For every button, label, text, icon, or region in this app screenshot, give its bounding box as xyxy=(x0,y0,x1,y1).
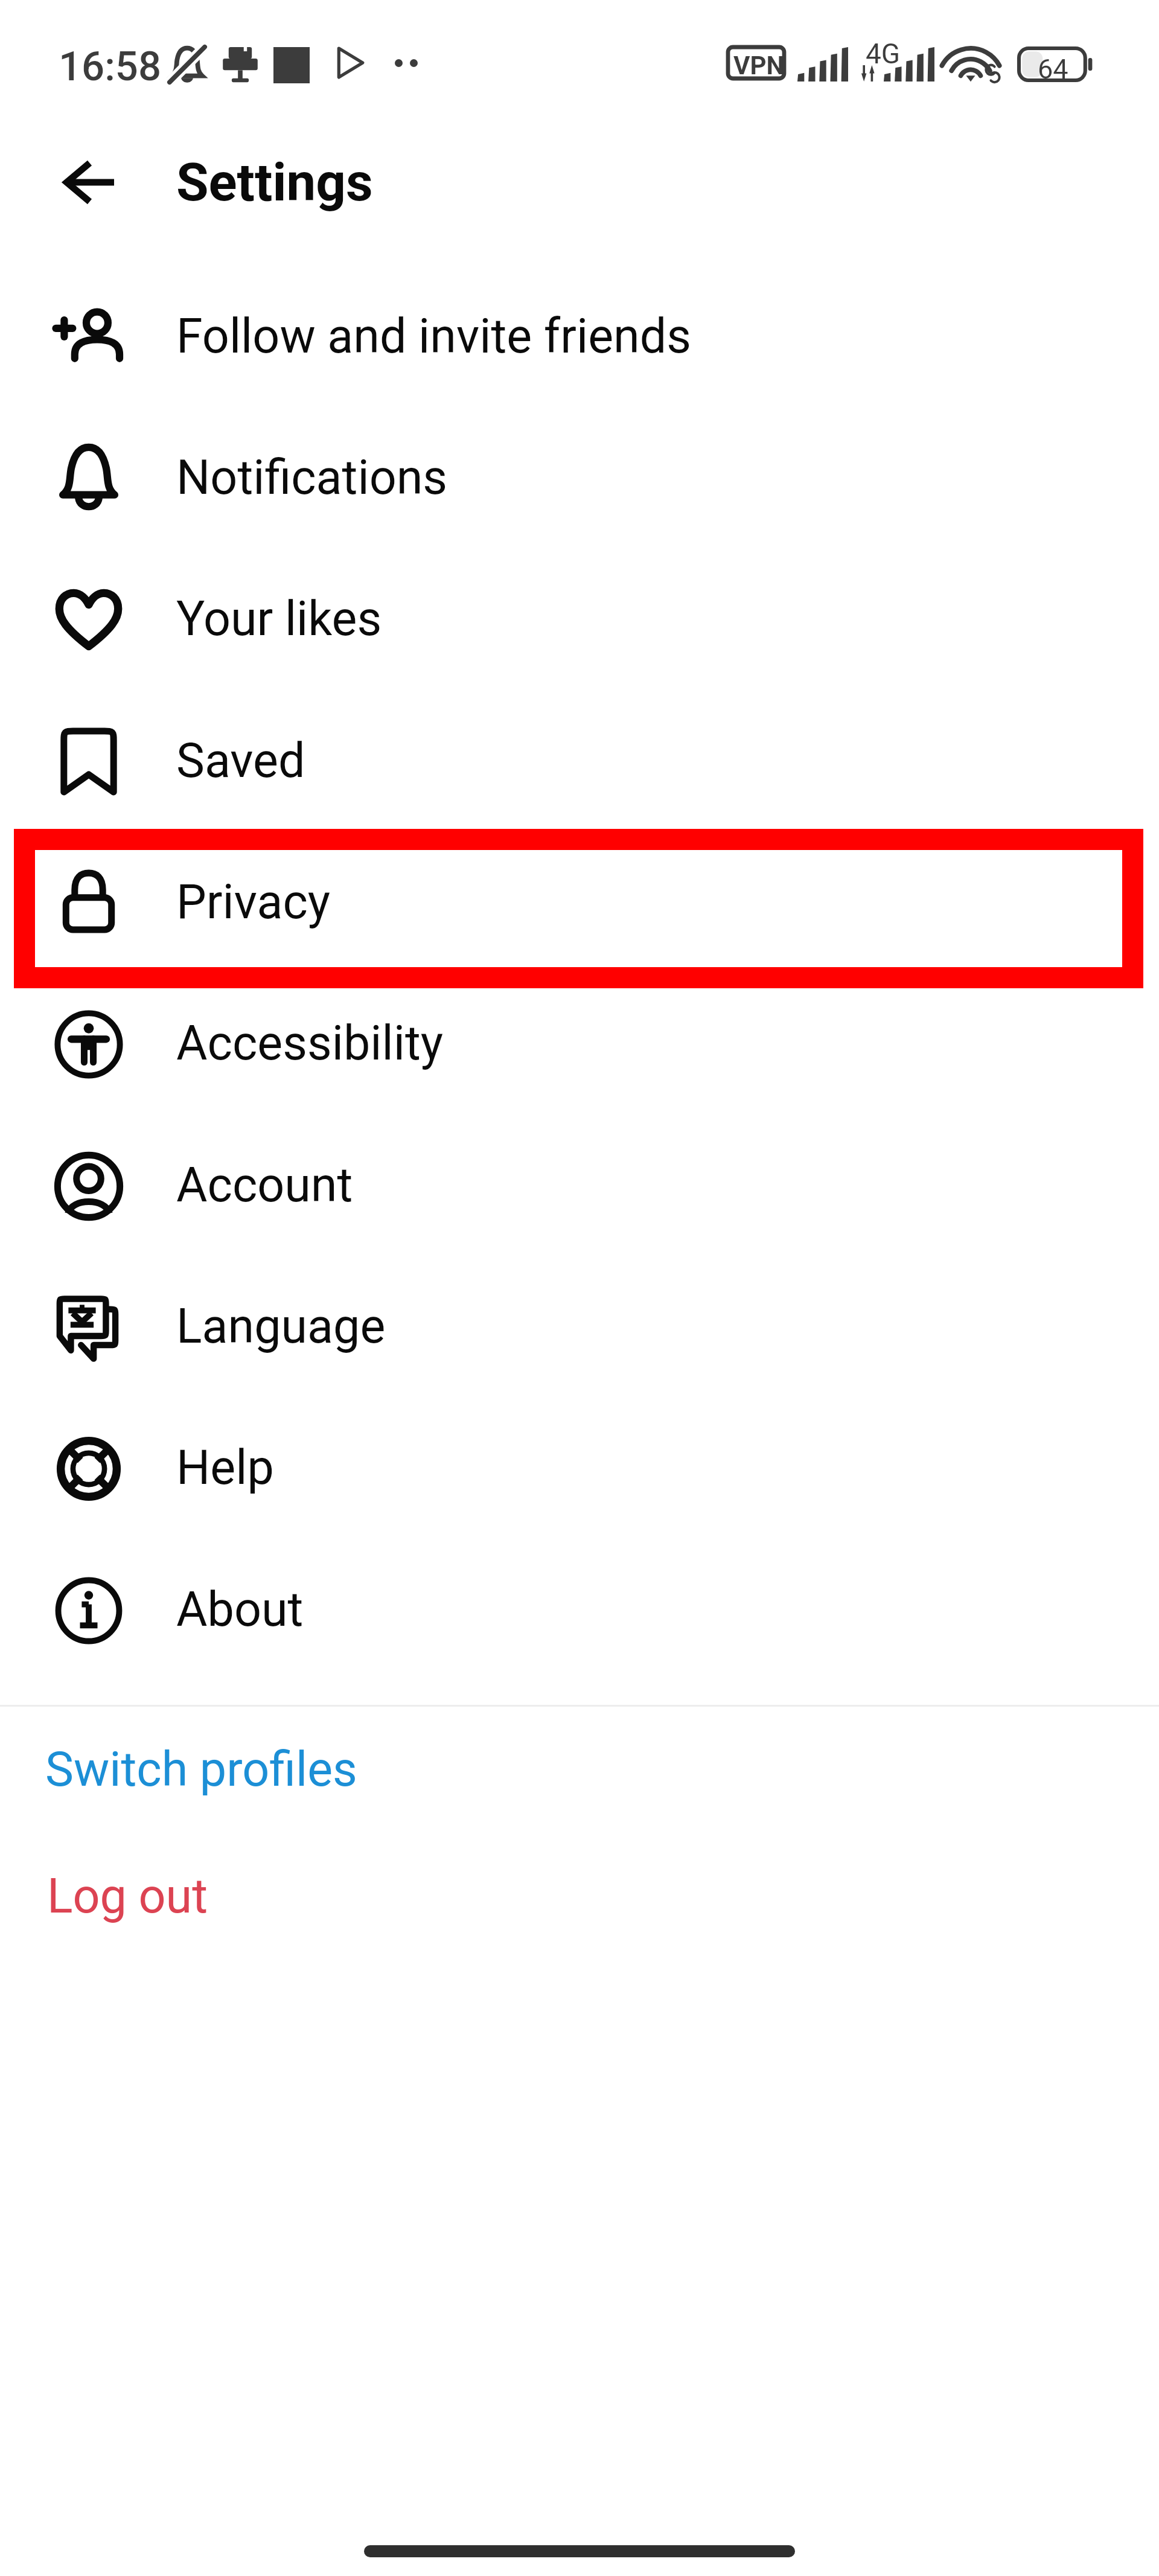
staticText: Log out xyxy=(47,1868,208,1925)
button[interactable]: Back xyxy=(41,134,138,231)
staticText: Your likes xyxy=(176,591,382,647)
staticText: Language xyxy=(176,1299,386,1355)
button[interactable]: Account xyxy=(0,1116,1159,1257)
staticText: Notifications xyxy=(176,450,448,506)
button[interactable]: Your likes xyxy=(0,549,1159,691)
button[interactable]: Saved xyxy=(0,691,1159,833)
staticText: Account xyxy=(176,1157,353,1213)
button[interactable]: About xyxy=(0,1540,1159,1681)
staticText: Accessibility xyxy=(176,1015,444,1072)
staticText: About xyxy=(176,1582,304,1638)
button[interactable]: Log out xyxy=(0,1835,1159,1961)
staticText: Help xyxy=(176,1440,274,1496)
button[interactable]: Help xyxy=(0,1398,1159,1539)
staticText: VPN xyxy=(733,51,785,80)
staticText: 16:58 xyxy=(59,43,161,91)
button[interactable]: Language xyxy=(0,1257,1159,1398)
button[interactable]: Switch profiles xyxy=(0,1708,1159,1834)
staticText: Follow and invite friends xyxy=(176,308,692,365)
button[interactable]: Follow and invite friends xyxy=(0,267,1159,408)
button[interactable]: Privacy xyxy=(0,833,1159,974)
staticText: 4G xyxy=(866,37,901,70)
staticText: Privacy xyxy=(176,874,331,930)
staticText: Saved xyxy=(176,733,305,789)
staticText: Switch profiles xyxy=(45,1742,357,1798)
staticText: 64 xyxy=(1038,53,1068,85)
button[interactable]: Accessibility xyxy=(0,974,1159,1115)
staticText: Settings xyxy=(176,152,373,213)
button[interactable]: Notifications xyxy=(0,408,1159,549)
